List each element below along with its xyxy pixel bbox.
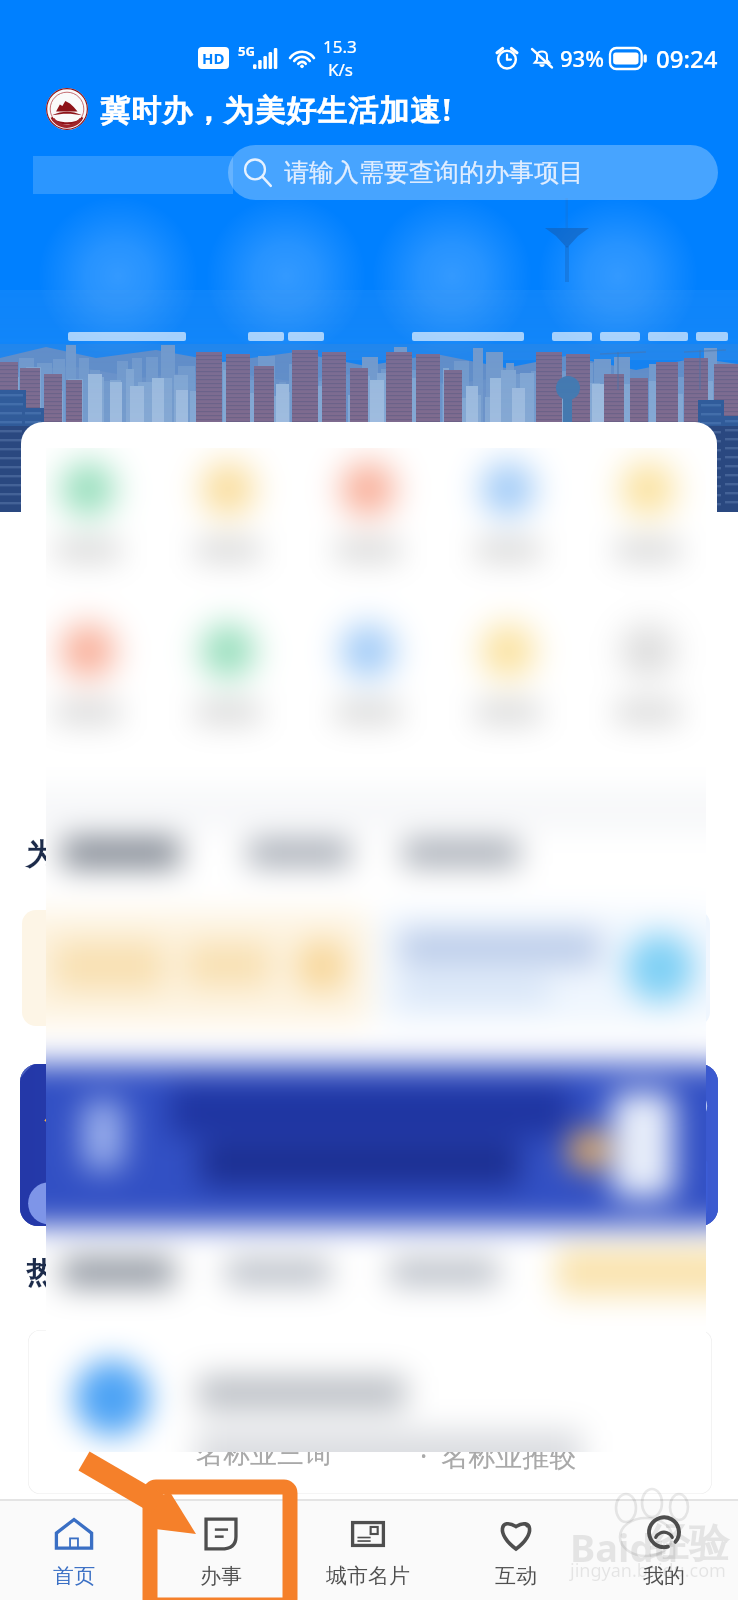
staticText: 为您推荐: [26, 836, 146, 874]
staticText: K/s: [328, 58, 353, 81]
staticText: Baidu: [570, 1521, 679, 1573]
staticText: 热门服务: [26, 1254, 146, 1292]
staticText: 城市名片: [326, 1563, 410, 1589]
staticText: 互动: [495, 1563, 537, 1589]
other: Highlight annotation: [0, 0, 738, 1600]
staticText: 首页: [53, 1563, 95, 1589]
staticText: 经验: [649, 1518, 729, 1568]
button[interactable]: City card: [294, 1501, 442, 1600]
staticText: 09:24: [656, 42, 718, 75]
button[interactable]: Interact: [442, 1501, 590, 1600]
staticText: · 名称业推较: [420, 1437, 577, 1474]
staticText: 93%: [560, 43, 604, 73]
button[interactable]: 请输入需要查询的办事项目: [228, 145, 718, 200]
button[interactable]: Home: [0, 1501, 147, 1600]
staticText: 我的: [643, 1563, 685, 1589]
staticText: jingyan.baidu.com: [570, 1558, 726, 1583]
staticText: 名称业三询: [196, 1437, 331, 1471]
staticText: 冀时办，为美好生活加速!: [100, 89, 454, 130]
staticText: 请输入需要查询的办事项目: [284, 157, 584, 188]
staticText: 15.3: [323, 35, 357, 58]
button[interactable]: Services: [147, 1501, 294, 1600]
staticText: HD: [202, 48, 225, 68]
button[interactable]: Profile: [590, 1501, 738, 1600]
staticText: 办事: [200, 1563, 242, 1589]
staticText: 5G: [238, 42, 255, 60]
